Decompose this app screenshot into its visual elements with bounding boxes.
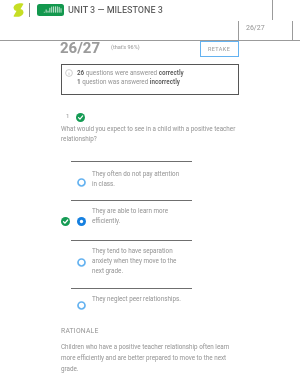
staticText: They often do not pay attention in class…	[92, 170, 184, 187]
other: Course	[37, 4, 64, 16]
staticText: They neglect peer relationships.	[92, 295, 181, 302]
staticText: RATIONALE	[61, 327, 99, 335]
staticText: UNIT 3 — MILESTONE 3	[68, 5, 163, 16]
staticText: 26 questions were answered correctly	[77, 69, 184, 76]
staticText: 1 question was answered incorrectly	[77, 78, 180, 85]
button[interactable]	[58, 201, 195, 240]
staticText: 26/27	[60, 39, 101, 57]
button[interactable]	[58, 241, 195, 288]
button[interactable]: RETAKE	[200, 41, 239, 57]
other: Home	[13, 3, 24, 17]
staticText: (that's 96%)	[111, 44, 140, 50]
staticText: Children who have a positive teacher rel…	[61, 343, 237, 372]
button[interactable]	[58, 289, 195, 320]
staticText: They are able to learn more efficiently.	[92, 207, 184, 224]
staticText: They tend to have separation anxiety whe…	[92, 247, 184, 274]
button[interactable]	[58, 162, 195, 200]
staticText: RETAKE	[208, 46, 231, 52]
staticText: 26/27	[246, 24, 265, 32]
staticText: What would you expect to see in a child …	[61, 125, 237, 142]
staticText: 1	[66, 112, 70, 119]
